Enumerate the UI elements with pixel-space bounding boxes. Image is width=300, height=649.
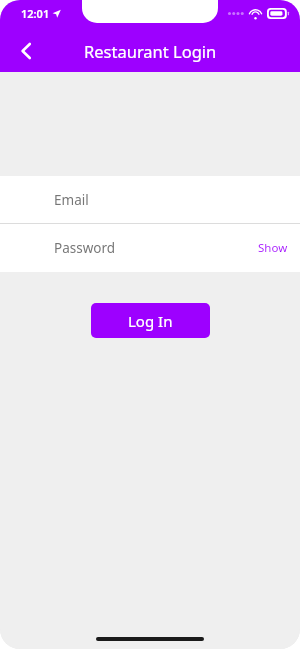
button[interactable]: Password xyxy=(0,224,300,272)
staticText: Show xyxy=(258,240,288,256)
staticText: Password xyxy=(54,239,116,257)
staticText: 12:01 xyxy=(21,6,50,21)
button[interactable]: Email xyxy=(0,176,300,223)
button[interactable]: Log In xyxy=(91,303,210,338)
staticText: Log In xyxy=(128,311,173,331)
button[interactable]: Back xyxy=(12,37,40,65)
button[interactable]: Show xyxy=(252,234,294,262)
staticText: Restaurant Login xyxy=(84,40,217,62)
staticText: Email xyxy=(54,191,89,209)
